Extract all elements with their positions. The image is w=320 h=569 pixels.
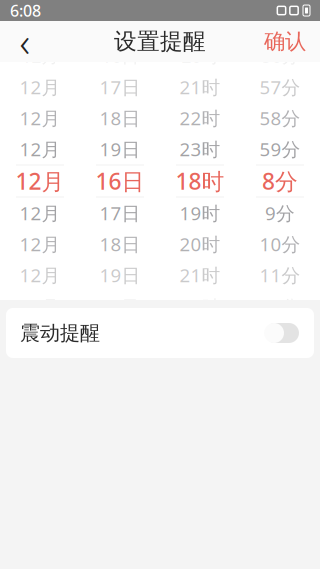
staticText: 23时: [179, 137, 220, 161]
button[interactable]: 确认: [250, 21, 320, 62]
staticText: 59分: [259, 137, 300, 161]
staticText: 16日: [101, 294, 138, 317]
staticText: 12月: [15, 166, 64, 196]
staticText: 12月: [19, 263, 60, 287]
staticText: 21时: [179, 263, 220, 287]
staticText: 12月: [19, 201, 60, 225]
button[interactable]: 返回: [0, 21, 50, 62]
staticText: 8分: [262, 166, 298, 196]
staticText: 16日: [101, 44, 138, 67]
staticText: 12分: [261, 294, 298, 317]
staticText: 16日: [95, 166, 144, 196]
staticText: 21时: [179, 75, 220, 99]
staticText: 19日: [99, 137, 140, 161]
staticText: 12月: [19, 232, 60, 256]
staticText: 12月: [21, 294, 58, 317]
button[interactable]: 震动提醒: [6, 308, 314, 358]
staticText: 确认: [264, 28, 306, 55]
staticText: 10分: [259, 232, 300, 256]
staticText: 20时: [181, 44, 218, 67]
staticText: 57分: [259, 75, 300, 99]
staticText: 12月: [19, 75, 60, 99]
staticText: 17日: [99, 75, 140, 99]
staticText: 19时: [179, 201, 220, 225]
staticText: 11分: [259, 263, 300, 287]
staticText: 18时: [175, 166, 224, 196]
staticText: 20时: [179, 232, 220, 256]
staticText: 19日: [99, 263, 140, 287]
staticText: 58分: [259, 106, 300, 130]
staticText: 22时: [181, 294, 218, 317]
staticText: 17日: [99, 201, 140, 225]
staticText: 18日: [99, 232, 140, 256]
staticText: 12月: [19, 137, 60, 161]
staticText: 设置提醒: [114, 28, 206, 55]
staticText: 18日: [99, 106, 140, 130]
staticText: 9分: [265, 201, 295, 225]
staticText: 震动提醒: [20, 321, 100, 345]
staticText: 56分: [261, 44, 298, 67]
staticText: 22时: [179, 106, 220, 130]
staticText: 12月: [19, 106, 60, 130]
staticText: ‹: [19, 15, 30, 68]
staticText: 6:08: [10, 0, 41, 21]
staticText: 12月: [21, 44, 58, 67]
